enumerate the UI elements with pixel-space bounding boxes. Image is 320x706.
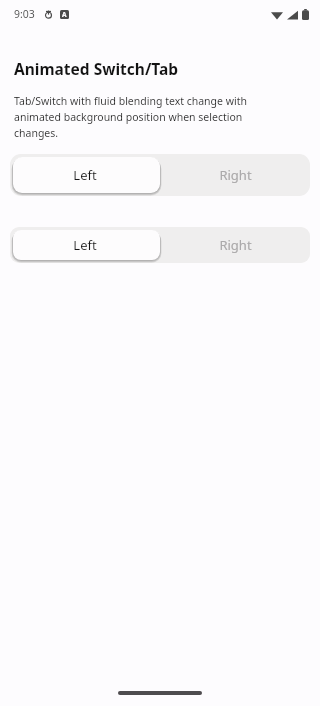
- staticText: Animated Switch/Tab: [14, 58, 179, 79]
- staticText: Left: [73, 166, 97, 184]
- staticText: Right: [219, 236, 252, 254]
- button[interactable]: Left: [10, 227, 160, 263]
- staticText: Right: [219, 166, 252, 184]
- staticText: Tab/Switch with fluid blending text chan…: [14, 94, 272, 140]
- button[interactable]: Right: [160, 154, 310, 196]
- staticText: Left: [73, 236, 97, 254]
- button[interactable]: Right: [160, 227, 310, 263]
- button[interactable]: Left: [10, 154, 160, 196]
- staticText: 9:03: [14, 7, 35, 21]
- staticText: A: [62, 10, 67, 19]
